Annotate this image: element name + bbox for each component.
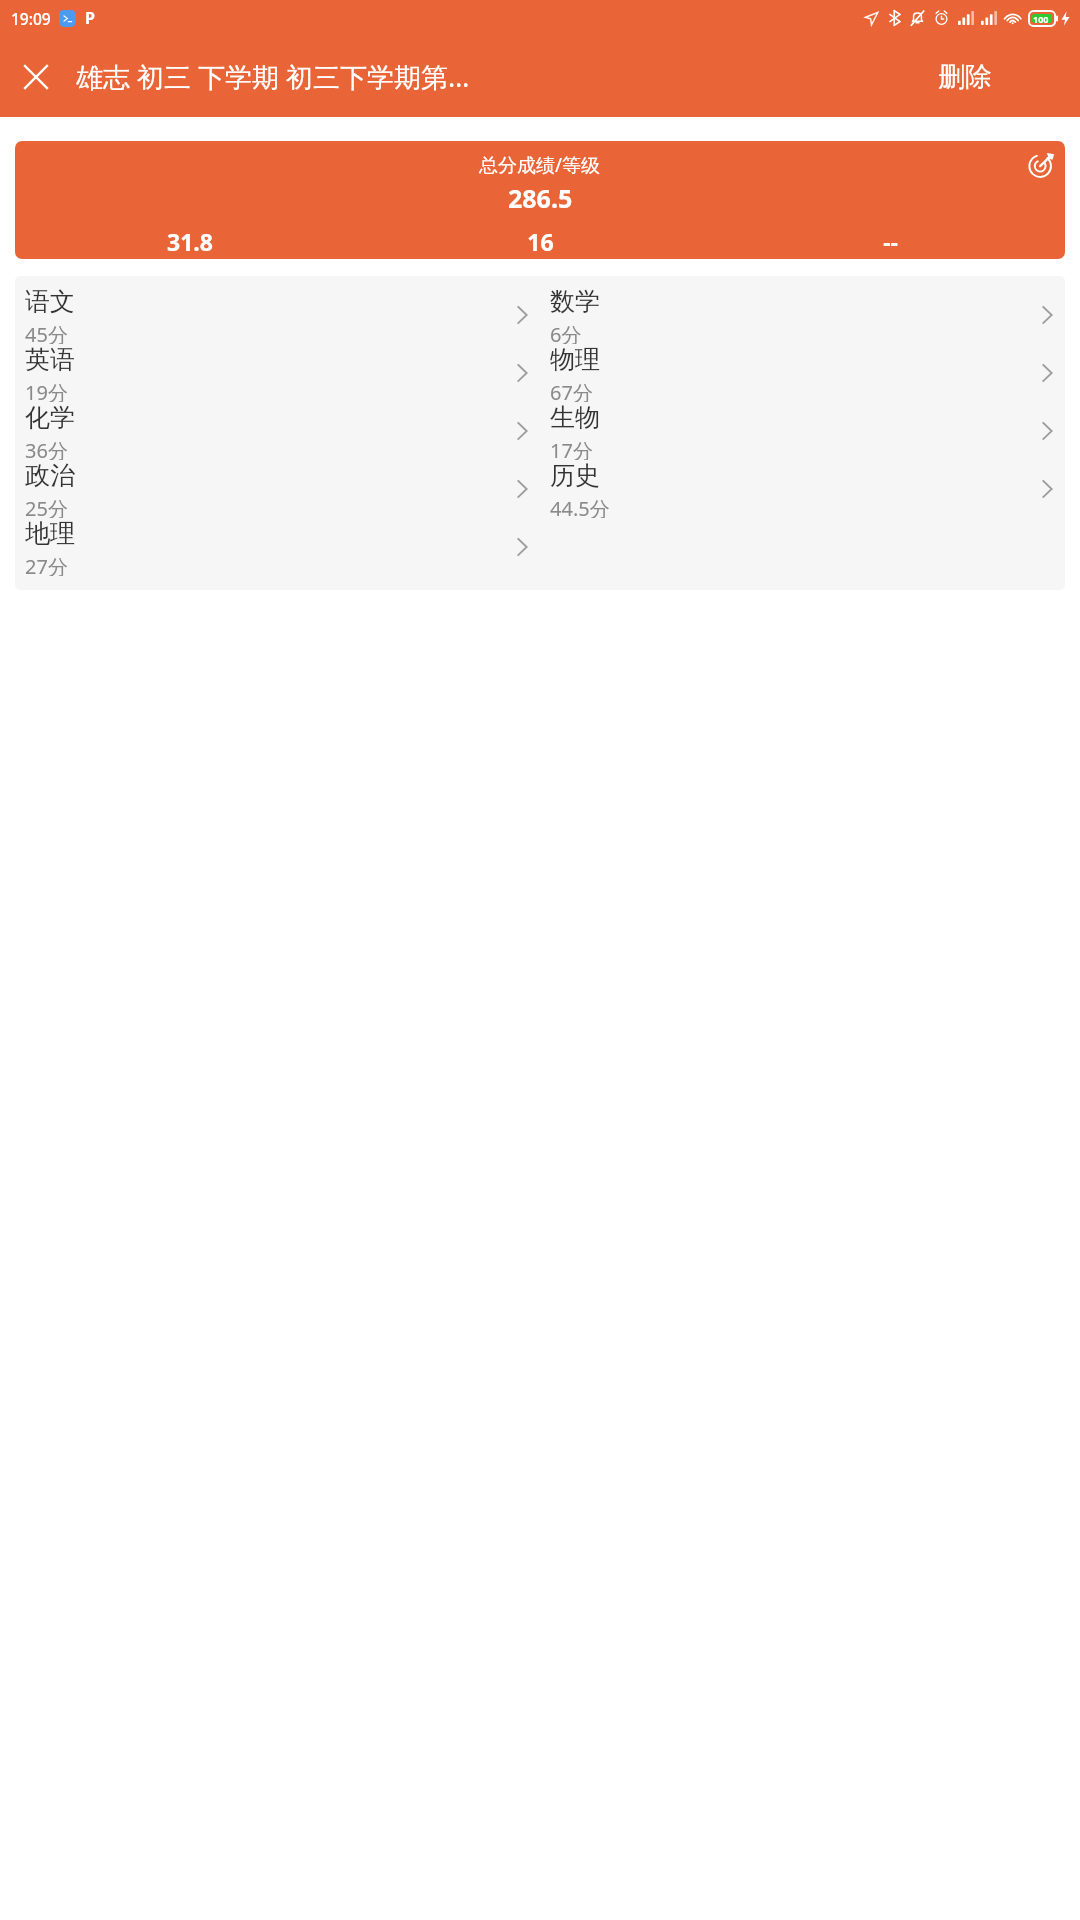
staticText: 19分 — [25, 379, 68, 402]
staticText: 17分 — [550, 437, 593, 460]
staticText: 27分 — [25, 553, 68, 576]
staticText: 物理 — [550, 344, 600, 375]
button[interactable]: 31.8 — [15, 226, 365, 259]
button[interactable]: 历史 — [540, 460, 1065, 518]
staticText: P — [85, 7, 95, 29]
button[interactable]: 语文 — [15, 286, 540, 344]
staticText: 286.5 — [508, 181, 573, 215]
staticText: 67分 — [550, 379, 593, 402]
staticText: 历史 — [550, 460, 600, 491]
staticText: 雄志 初三 下学期 初三下学期第… — [76, 58, 470, 95]
staticText: 44.5分 — [550, 495, 610, 518]
button[interactable]: 数学 — [540, 286, 1065, 344]
button[interactable]: 关闭 — [16, 57, 56, 97]
button[interactable]: 生物 — [540, 402, 1065, 460]
staticText: 36分 — [25, 437, 68, 460]
button[interactable]: 政治 — [15, 460, 540, 518]
button[interactable]: 英语 — [15, 344, 540, 402]
staticText: 100 — [1033, 13, 1049, 25]
button[interactable]: 地理 — [15, 518, 540, 576]
button[interactable]: 总分成绩/等级 — [15, 141, 1065, 259]
staticText: 45分 — [25, 321, 68, 344]
staticText: 政治 — [25, 460, 75, 491]
staticText: 化学 — [25, 402, 75, 433]
staticText: 数学 — [550, 286, 600, 317]
staticText: 25分 — [25, 495, 68, 518]
staticText: 生物 — [550, 402, 600, 433]
button[interactable]: 目标 — [1024, 147, 1058, 181]
button[interactable]: 化学 — [15, 402, 540, 460]
staticText: 16 — [527, 226, 554, 257]
button[interactable]: 删除 — [936, 54, 994, 100]
staticText: 总分成绩/等级 — [479, 152, 601, 178]
staticText: 地理 — [25, 518, 75, 549]
staticText: 删除 — [938, 60, 992, 94]
staticText: 19:09 — [11, 8, 51, 29]
staticText: 语文 — [25, 286, 75, 317]
staticText: 31.8 — [167, 226, 213, 257]
staticText: -- — [883, 226, 898, 257]
button[interactable]: 物理 — [540, 344, 1065, 402]
staticText: 英语 — [25, 344, 75, 375]
staticText: 6分 — [550, 321, 582, 344]
button[interactable]: -- — [715, 226, 1065, 259]
button[interactable]: 16 — [365, 226, 715, 259]
